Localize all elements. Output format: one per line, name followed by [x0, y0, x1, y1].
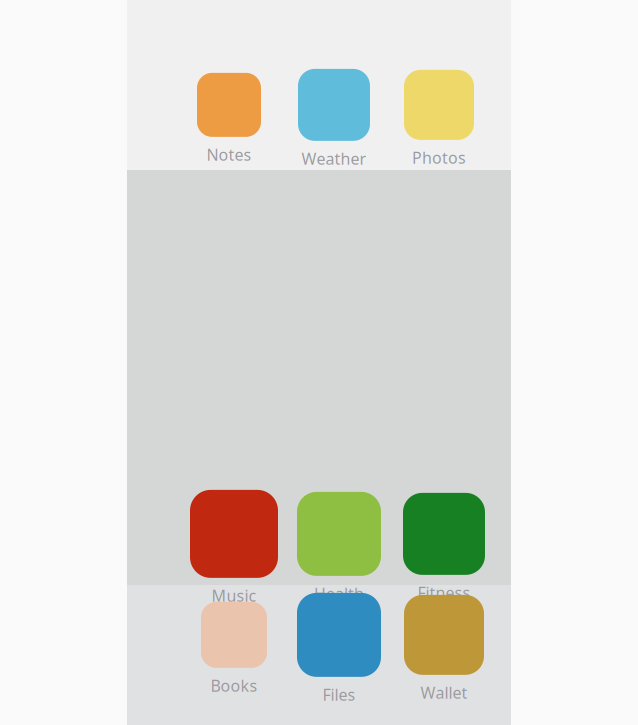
button[interactable]: Photos: [391, 60, 486, 178]
button[interactable]: Health: [291, 489, 386, 607]
staticText: Weather: [301, 148, 366, 169]
staticText: Wallet: [420, 682, 467, 703]
button[interactable]: Books: [186, 607, 281, 691]
staticText: Books: [210, 675, 257, 696]
staticText: Health: [314, 583, 364, 604]
staticText: Files: [322, 684, 355, 705]
button[interactable]: Music: [186, 489, 281, 607]
button[interactable]: Files: [291, 607, 386, 691]
button[interactable]: Fitness: [396, 489, 491, 607]
button[interactable]: Wallet: [396, 607, 491, 691]
button[interactable]: Notes: [181, 60, 276, 178]
staticText: Notes: [206, 144, 251, 165]
staticText: Music: [211, 585, 256, 606]
button[interactable]: Weather: [286, 60, 381, 178]
staticText: Photos: [412, 147, 466, 168]
staticText: Fitness: [417, 582, 470, 603]
